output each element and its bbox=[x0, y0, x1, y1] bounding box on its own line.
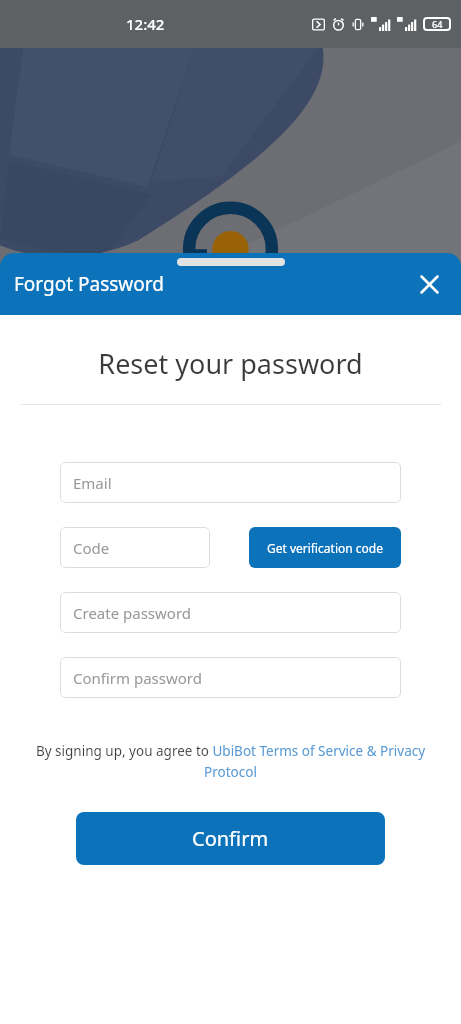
staticText: Code bbox=[73, 538, 110, 558]
button[interactable]: Code bbox=[60, 527, 210, 568]
staticText: 64 bbox=[432, 18, 443, 30]
staticText: Get verification code bbox=[267, 540, 383, 556]
staticText: Forgot Password bbox=[14, 271, 164, 297]
button[interactable]: Forgot Password bbox=[14, 271, 164, 297]
button[interactable]: Get verification code bbox=[249, 527, 401, 568]
button[interactable]: Create password bbox=[60, 592, 401, 633]
staticText: 12:42 bbox=[126, 14, 165, 34]
staticText: Reset your password bbox=[0, 345, 461, 382]
staticText: Confirm bbox=[192, 825, 269, 852]
button[interactable]: Confirm password bbox=[60, 657, 401, 698]
button[interactable]: Email bbox=[60, 462, 401, 503]
staticText: By signing up, you agree to UbiBot Terms… bbox=[22, 742, 439, 781]
staticText: Create password bbox=[73, 603, 192, 623]
staticText: Email bbox=[73, 473, 112, 493]
staticText: Confirm password bbox=[73, 668, 202, 688]
button[interactable]: By signing up, you agree to UbiBot Terms… bbox=[22, 742, 439, 781]
button[interactable]: Close bbox=[409, 264, 449, 304]
button[interactable]: Confirm bbox=[76, 812, 385, 865]
